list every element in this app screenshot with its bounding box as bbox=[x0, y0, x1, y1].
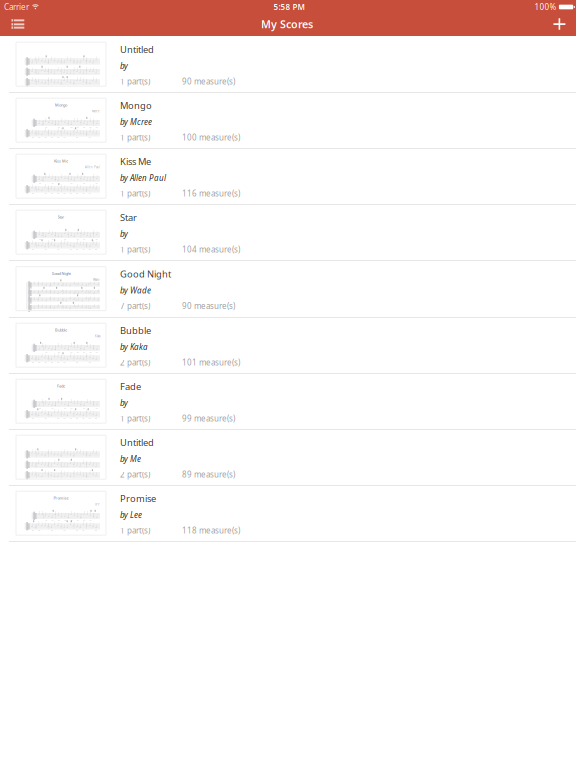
staticText: Mcree bbox=[92, 109, 100, 113]
button[interactable]: Good Night bbox=[0, 261, 576, 318]
staticText: Lee bbox=[95, 502, 100, 506]
staticText: Kiss Me bbox=[120, 155, 151, 168]
staticText: Promise bbox=[120, 492, 156, 505]
staticText: 101 measure(s) bbox=[182, 357, 240, 368]
staticText: Fade bbox=[57, 383, 65, 388]
staticText: 104 measure(s) bbox=[182, 244, 240, 255]
staticText: 1 part(s) bbox=[120, 413, 150, 424]
button[interactable]: Star bbox=[0, 205, 576, 261]
staticText: 118 measure(s) bbox=[182, 525, 240, 536]
staticText: Untitled bbox=[120, 436, 154, 449]
staticText: Mongo bbox=[55, 102, 67, 107]
staticText: Carrier bbox=[4, 2, 29, 12]
staticText: by Allen Paul bbox=[120, 173, 166, 183]
staticText: Good Night bbox=[120, 268, 171, 280]
staticText: 99 measure(s) bbox=[182, 413, 235, 424]
staticText: Wade bbox=[93, 278, 100, 281]
staticText: 2 part(s) bbox=[120, 469, 150, 480]
staticText: 1 part(s) bbox=[120, 76, 150, 87]
staticText: 1 part(s) bbox=[120, 244, 150, 255]
staticText: My Scores bbox=[261, 17, 313, 31]
button[interactable]: Mongo bbox=[0, 93, 576, 149]
button[interactable]: Promise bbox=[0, 486, 576, 542]
staticText: Mongo bbox=[120, 99, 152, 112]
staticText: Kaka bbox=[95, 334, 100, 338]
staticText: Bubble bbox=[120, 324, 151, 337]
staticText: 100 measure(s) bbox=[182, 132, 240, 143]
staticText: 89 measure(s) bbox=[182, 469, 235, 480]
staticText: by bbox=[120, 61, 128, 71]
staticText: by bbox=[120, 229, 128, 239]
button[interactable]: Kiss Me bbox=[0, 149, 576, 205]
staticText: by Kaka bbox=[120, 342, 148, 352]
staticText: Allen Paul bbox=[85, 165, 100, 169]
staticText: by Mcree bbox=[120, 117, 152, 127]
staticText: by Wade bbox=[120, 285, 151, 296]
button[interactable]: Bubble bbox=[0, 318, 576, 374]
button[interactable]: Untitled bbox=[0, 37, 576, 93]
staticText: Untitled bbox=[120, 43, 154, 56]
staticText: 5:58 PM bbox=[273, 2, 304, 12]
staticText: 116 measure(s) bbox=[182, 188, 240, 199]
staticText: 1 part(s) bbox=[120, 525, 150, 536]
staticText: Bubble bbox=[55, 327, 67, 332]
staticText: Star bbox=[57, 214, 64, 219]
staticText: Promise bbox=[53, 495, 68, 500]
staticText: Fade bbox=[120, 380, 141, 393]
staticText: 7 part(s) bbox=[120, 301, 150, 311]
staticText: 1 part(s) bbox=[120, 188, 150, 199]
staticText: 90 measure(s) bbox=[182, 301, 235, 311]
staticText: Star bbox=[120, 211, 137, 224]
button[interactable]: Add score bbox=[544, 15, 576, 33]
staticText: by bbox=[120, 398, 128, 408]
button[interactable]: Fade bbox=[0, 374, 576, 430]
staticText: 2 part(s) bbox=[120, 357, 150, 368]
staticText: by Me bbox=[120, 454, 141, 464]
staticText: Good Night bbox=[51, 271, 70, 276]
staticText: Kiss Me bbox=[54, 158, 68, 163]
staticText: by Lee bbox=[120, 510, 142, 520]
staticText: 1 part(s) bbox=[120, 132, 150, 143]
staticText: 90 measure(s) bbox=[182, 76, 235, 87]
staticText: 100% bbox=[534, 2, 556, 12]
button[interactable]: Untitled bbox=[0, 430, 576, 486]
button[interactable]: Menu bbox=[0, 15, 33, 33]
